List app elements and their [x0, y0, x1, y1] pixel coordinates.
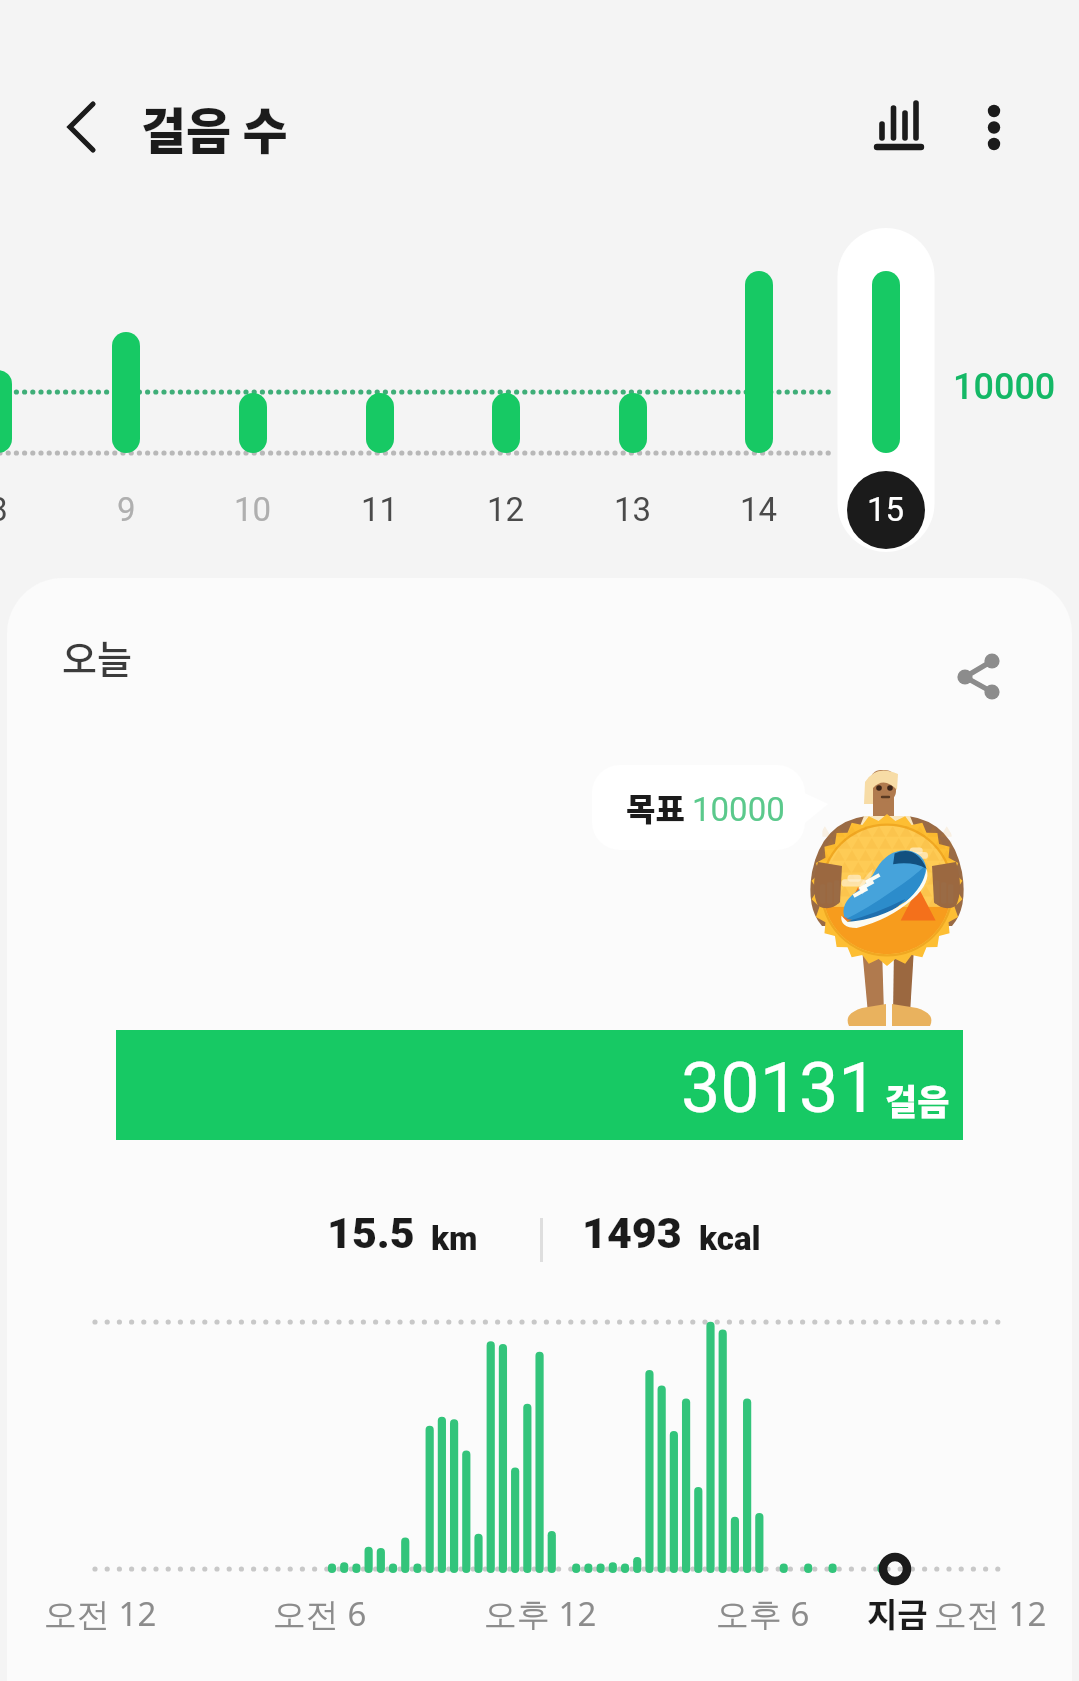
staticText: 12 — [487, 490, 525, 529]
staticText: 9 — [117, 490, 136, 529]
button[interactable]: More options — [950, 86, 1036, 172]
button[interactable]: 30131 — [116, 1030, 963, 1140]
staticText: 14 — [740, 490, 778, 529]
staticText: 15 — [867, 490, 905, 529]
button[interactable]: Share — [937, 623, 1037, 723]
staticText: 11 — [361, 490, 399, 529]
staticText: 오후 12 — [484, 1591, 597, 1636]
staticText: kcal — [699, 1219, 761, 1258]
staticText: 오후 6 — [716, 1591, 810, 1636]
staticText: 13 — [614, 490, 652, 529]
staticText: 30131 — [681, 1047, 878, 1129]
staticText: 오전 6 — [273, 1591, 367, 1636]
staticText: 10 — [234, 490, 272, 529]
button[interactable] — [592, 765, 805, 850]
staticText: 걸음 — [885, 1074, 950, 1125]
staticText: 오전 12 — [44, 1591, 157, 1636]
button[interactable]: Back — [40, 86, 126, 172]
staticText: 지금 — [867, 1589, 928, 1637]
button[interactable]: Chart — [856, 86, 942, 172]
staticText: 1493 — [582, 1208, 682, 1258]
staticText: 10000 — [692, 790, 785, 829]
staticText: 8 — [0, 490, 8, 529]
staticText: km — [431, 1219, 478, 1258]
staticText: 10000 — [953, 366, 1056, 408]
staticText: 오전 12 — [934, 1591, 1047, 1636]
staticText: 걸음 수 — [141, 92, 288, 163]
staticText: 오늘 — [62, 629, 132, 684]
staticText: 15.5 — [327, 1208, 415, 1258]
staticText: 목표 — [626, 784, 685, 830]
